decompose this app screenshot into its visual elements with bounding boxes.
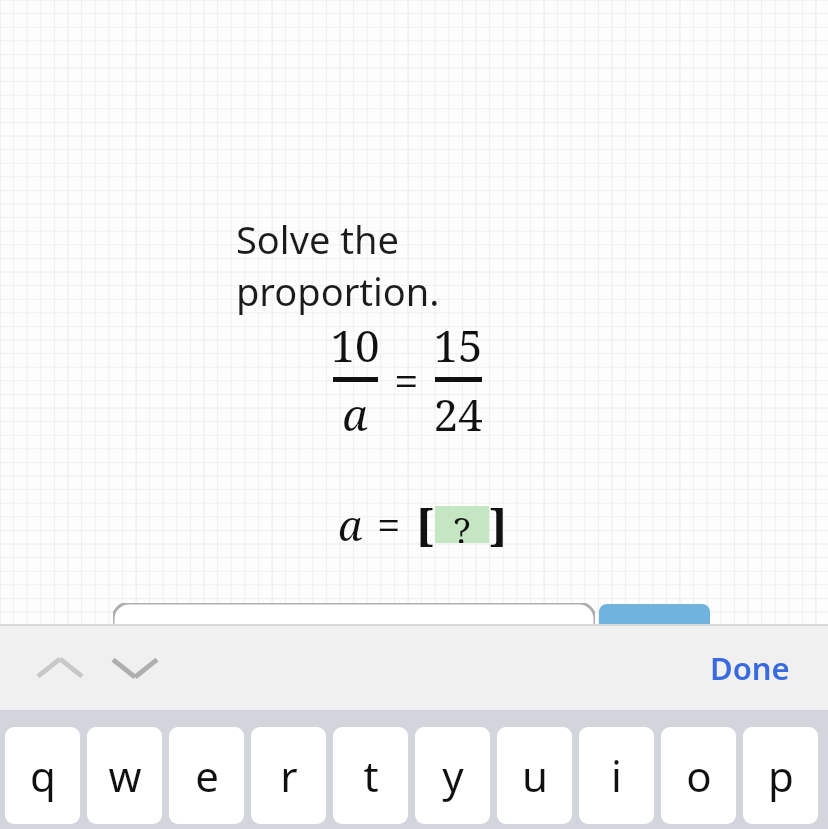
staticText: =: [377, 496, 401, 553]
staticText: [: [416, 494, 435, 554]
button[interactable]: o: [661, 727, 736, 824]
staticText: 10: [330, 315, 380, 375]
staticText: i: [611, 747, 622, 804]
staticText: a: [342, 384, 368, 444]
staticText: ?: [453, 506, 471, 543]
button[interactable]: y: [415, 727, 490, 824]
staticText: =: [394, 350, 419, 410]
staticText: e: [195, 747, 219, 804]
staticText: Enter: [625, 620, 685, 644]
button[interactable]: i: [579, 727, 654, 824]
button[interactable]: Enter: [599, 604, 710, 644]
button[interactable]: Previous field: [30, 645, 90, 691]
staticText: p: [768, 747, 794, 804]
staticText: Solve the proportion.: [236, 213, 596, 317]
button[interactable]: Next field: [105, 645, 165, 691]
staticText: w: [108, 747, 142, 804]
staticText: Done: [710, 647, 790, 689]
button[interactable]: p: [743, 727, 818, 824]
button[interactable]: q: [5, 727, 80, 824]
staticText: 24: [433, 384, 483, 444]
button[interactable]: [113, 603, 595, 643]
button[interactable]: Done: [700, 638, 800, 698]
staticText: u: [522, 747, 548, 804]
button[interactable]: u: [497, 727, 572, 824]
staticText: y: [442, 747, 464, 804]
button[interactable]: e: [169, 727, 244, 824]
staticText: o: [686, 747, 712, 804]
button[interactable]: t: [333, 727, 408, 824]
staticText: r: [280, 747, 298, 804]
button[interactable]: w: [87, 727, 162, 824]
staticText: t: [363, 747, 379, 804]
button[interactable]: ?: [435, 506, 489, 543]
staticText: q: [30, 747, 56, 804]
staticText: ]: [489, 494, 508, 554]
staticText: a: [338, 496, 363, 553]
staticText: 15: [433, 315, 483, 375]
button[interactable]: r: [251, 727, 326, 824]
